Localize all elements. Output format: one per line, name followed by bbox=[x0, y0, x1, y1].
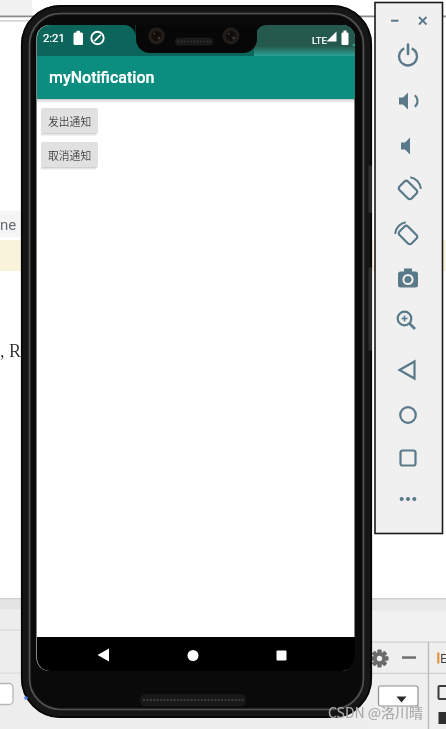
button[interactable] bbox=[392, 263, 424, 295]
button[interactable] bbox=[180, 649, 204, 671]
button[interactable] bbox=[392, 174, 424, 206]
button[interactable] bbox=[264, 649, 288, 671]
button[interactable] bbox=[414, 12, 431, 29]
staticText: 2:21 bbox=[43, 32, 65, 45]
staticText: 取消通知 bbox=[48, 147, 92, 163]
staticText: 发出通知 bbox=[48, 113, 92, 129]
button[interactable] bbox=[392, 306, 424, 338]
staticText: ne bbox=[0, 216, 17, 234]
button[interactable] bbox=[85, 649, 109, 671]
staticText: LTE bbox=[312, 35, 327, 46]
staticText: , R bbox=[0, 341, 22, 361]
button[interactable] bbox=[392, 399, 424, 431]
button[interactable] bbox=[392, 442, 424, 474]
button[interactable] bbox=[386, 13, 402, 29]
button[interactable] bbox=[392, 219, 424, 251]
button[interactable] bbox=[392, 354, 424, 386]
button[interactable]: 取消通知 bbox=[41, 142, 98, 168]
staticText: E bbox=[440, 650, 446, 666]
button[interactable]: 发出通知 bbox=[41, 108, 98, 134]
button[interactable] bbox=[392, 483, 424, 515]
staticText: CSDN @洛川晴 bbox=[328, 702, 424, 722]
button[interactable] bbox=[392, 130, 424, 162]
staticText: myNotification bbox=[49, 68, 155, 87]
button[interactable] bbox=[392, 40, 424, 72]
button[interactable] bbox=[392, 85, 424, 117]
